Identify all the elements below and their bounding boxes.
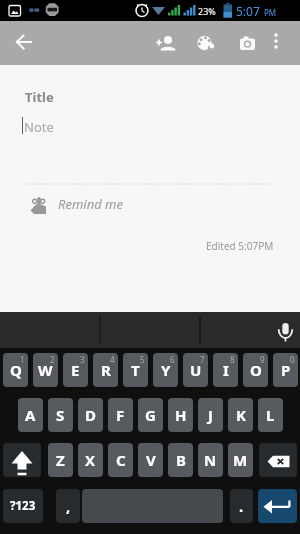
button[interactable]: T <box>123 353 148 387</box>
button[interactable]: A <box>18 398 43 432</box>
staticText: 1 <box>20 354 25 365</box>
staticText: 3 <box>80 354 85 365</box>
staticText: L <box>266 405 275 425</box>
button[interactable]: C <box>108 443 133 477</box>
button[interactable]: N <box>198 443 223 477</box>
button[interactable]: G <box>138 398 163 432</box>
staticText: Q <box>10 360 22 380</box>
staticText: S <box>56 405 65 425</box>
staticText: U <box>190 360 202 380</box>
staticText: F <box>116 405 125 425</box>
button[interactable]: J <box>198 398 223 432</box>
staticText: Y <box>161 360 171 380</box>
button[interactable]: U <box>183 353 208 387</box>
staticText: , <box>66 496 71 516</box>
staticText: J <box>208 405 213 425</box>
button[interactable]: I <box>213 353 238 387</box>
staticText: 0 <box>290 354 295 365</box>
staticText: T <box>131 360 140 380</box>
staticText: 23% <box>198 5 216 17</box>
staticText: C <box>116 450 126 470</box>
staticText: Note <box>24 118 54 136</box>
staticText: PM <box>264 7 277 18</box>
button[interactable]: ?123 <box>3 489 43 523</box>
button[interactable]: F <box>108 398 133 432</box>
staticText: P <box>281 360 291 380</box>
button[interactable]: Z <box>48 443 73 477</box>
button[interactable]: Remind me <box>24 189 254 217</box>
button[interactable]: E <box>63 353 88 387</box>
staticText: O <box>250 360 262 380</box>
staticText: A <box>25 405 36 425</box>
button[interactable] <box>8 27 40 59</box>
button[interactable] <box>259 443 297 477</box>
button[interactable]: L <box>258 398 283 432</box>
button[interactable] <box>152 27 184 59</box>
button[interactable] <box>231 27 263 59</box>
button[interactable]: Q <box>3 353 28 387</box>
button[interactable]: S <box>48 398 73 432</box>
staticText: Remind me <box>58 195 123 213</box>
staticText: G <box>145 405 156 425</box>
button[interactable]: W <box>33 353 58 387</box>
staticText: R <box>101 360 111 380</box>
button[interactable]: . <box>230 489 253 523</box>
button[interactable]: H <box>168 398 193 432</box>
button[interactable] <box>3 443 41 477</box>
staticText: M <box>233 450 248 470</box>
staticText: K <box>236 405 246 425</box>
staticText: B <box>176 450 186 470</box>
staticText: 5:07 <box>236 3 260 19</box>
staticText: 2 <box>50 354 55 365</box>
staticText: V <box>146 450 156 470</box>
staticText: I <box>223 360 229 380</box>
staticText: H <box>175 405 187 425</box>
button[interactable]: , <box>56 489 80 523</box>
staticText: Edited 5:07PM <box>206 239 274 253</box>
button[interactable]: P <box>273 353 298 387</box>
staticText: 6 <box>170 354 175 365</box>
button[interactable]: O <box>243 353 268 387</box>
staticText: Title <box>25 88 54 106</box>
button[interactable] <box>262 27 290 55</box>
staticText: X <box>85 450 96 470</box>
staticText: 5 <box>140 354 145 365</box>
staticText: 7 <box>200 354 205 365</box>
staticText: 4 <box>110 354 115 365</box>
staticText: 9 <box>260 354 265 365</box>
button[interactable] <box>189 27 221 59</box>
button[interactable]: X <box>78 443 103 477</box>
button[interactable]: V <box>138 443 163 477</box>
staticText: D <box>85 405 96 425</box>
staticText: . <box>239 496 244 516</box>
staticText: W <box>38 360 53 380</box>
button[interactable]: R <box>93 353 118 387</box>
staticText: Z <box>56 450 65 470</box>
button[interactable]: B <box>168 443 193 477</box>
staticText: N <box>204 450 217 470</box>
button[interactable] <box>258 489 297 523</box>
staticText: ?123 <box>10 498 36 514</box>
button[interactable]: K <box>228 398 253 432</box>
staticText: E <box>71 360 80 380</box>
button[interactable]: Y <box>153 353 178 387</box>
button[interactable]: D <box>78 398 103 432</box>
button[interactable]: M <box>228 443 253 477</box>
staticText: 8 <box>230 354 235 365</box>
